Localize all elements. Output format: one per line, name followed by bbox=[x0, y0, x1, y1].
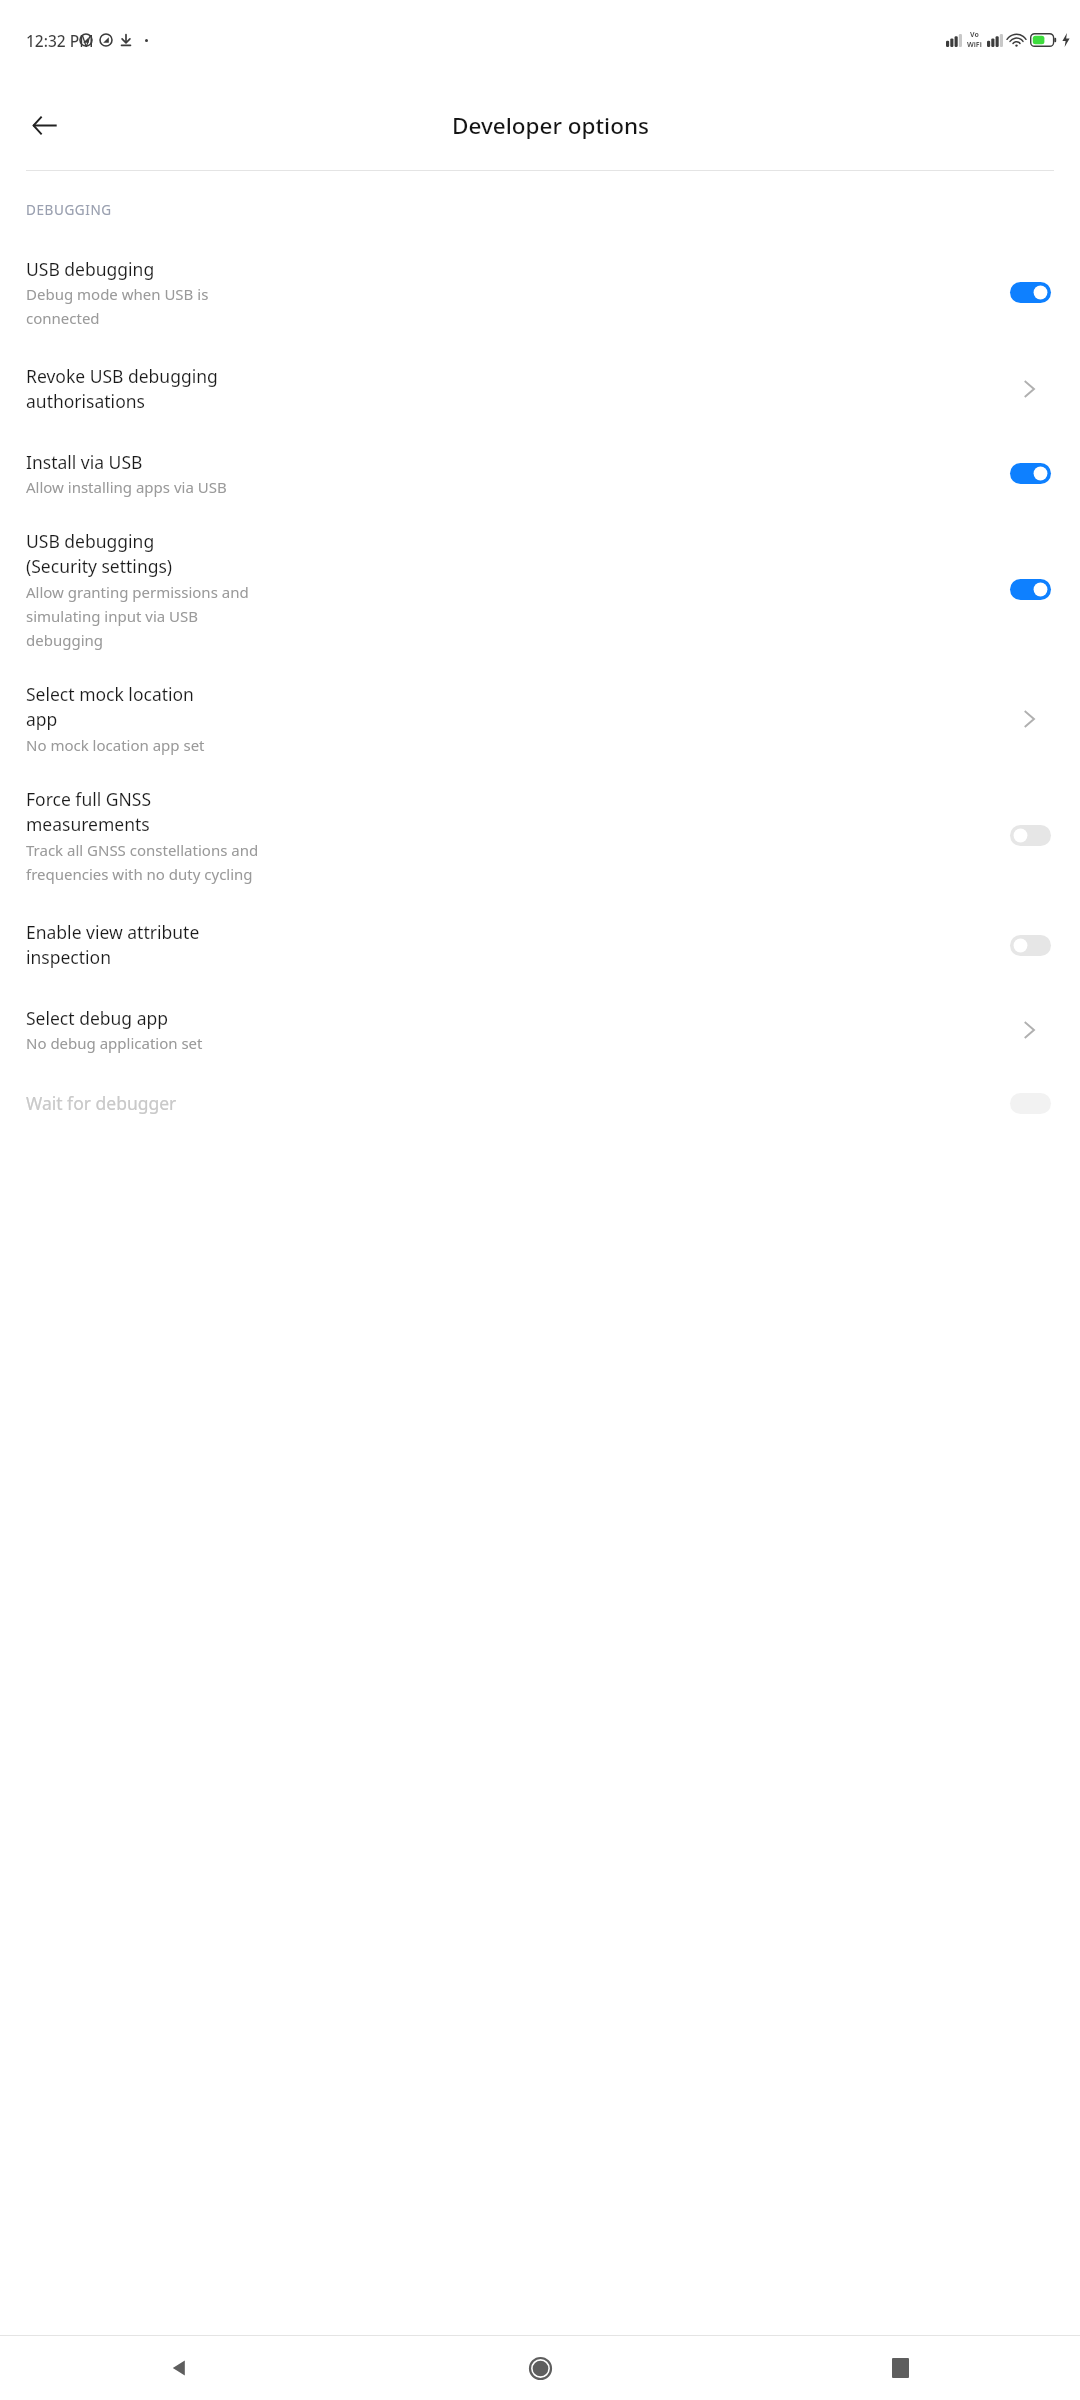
button[interactable]: Home bbox=[360, 2336, 720, 2400]
staticText: No mock location app set bbox=[26, 735, 205, 755]
button[interactable]: Revoke USB debugging authorisations bbox=[0, 344, 1080, 434]
staticText: Allow installing apps via USB bbox=[26, 477, 227, 497]
staticText: Install via USB bbox=[26, 450, 143, 474]
staticText: Allow granting permissions and simulatin… bbox=[26, 582, 278, 650]
button[interactable]: Force full GNSS measurements bbox=[0, 771, 1080, 900]
staticText: Force full GNSS measurements bbox=[26, 787, 256, 837]
staticText: 12:32 PM bbox=[26, 30, 94, 51]
staticText: Vo bbox=[970, 30, 979, 40]
staticText: Select mock location app bbox=[26, 682, 224, 732]
staticText: No debug application set bbox=[26, 1033, 203, 1053]
staticText: USB debugging bbox=[26, 257, 155, 281]
button[interactable]: Enable view attribute inspection bbox=[0, 900, 1080, 990]
button[interactable]: USB debugging (Security settings) bbox=[0, 513, 1080, 666]
button[interactable]: Recent apps bbox=[720, 2336, 1080, 2400]
staticText: USB debugging (Security settings) bbox=[26, 529, 211, 579]
staticText: Developer options bbox=[452, 110, 649, 141]
button[interactable]: USB debugging bbox=[0, 241, 1080, 344]
staticText: Select debug app bbox=[26, 1006, 168, 1030]
staticText: Wait for debugger bbox=[26, 1091, 177, 1115]
button[interactable]: Wait for debugger bbox=[0, 1069, 1080, 1137]
button[interactable]: Back bbox=[0, 2336, 360, 2400]
staticText: Debug mode when USB is connected bbox=[26, 284, 278, 328]
button[interactable]: Navigate up bbox=[20, 101, 68, 149]
button[interactable]: Select mock location app bbox=[0, 666, 1080, 771]
button[interactable]: Select debug app bbox=[0, 990, 1080, 1069]
button[interactable]: Install via USB bbox=[0, 434, 1080, 513]
staticText: DEBUGGING bbox=[26, 201, 112, 219]
staticText: Revoke USB debugging authorisations bbox=[26, 364, 286, 414]
staticText: WiFi bbox=[967, 40, 982, 50]
staticText: Track all GNSS constellations and freque… bbox=[26, 840, 278, 884]
staticText: Enable view attribute inspection bbox=[26, 920, 266, 970]
